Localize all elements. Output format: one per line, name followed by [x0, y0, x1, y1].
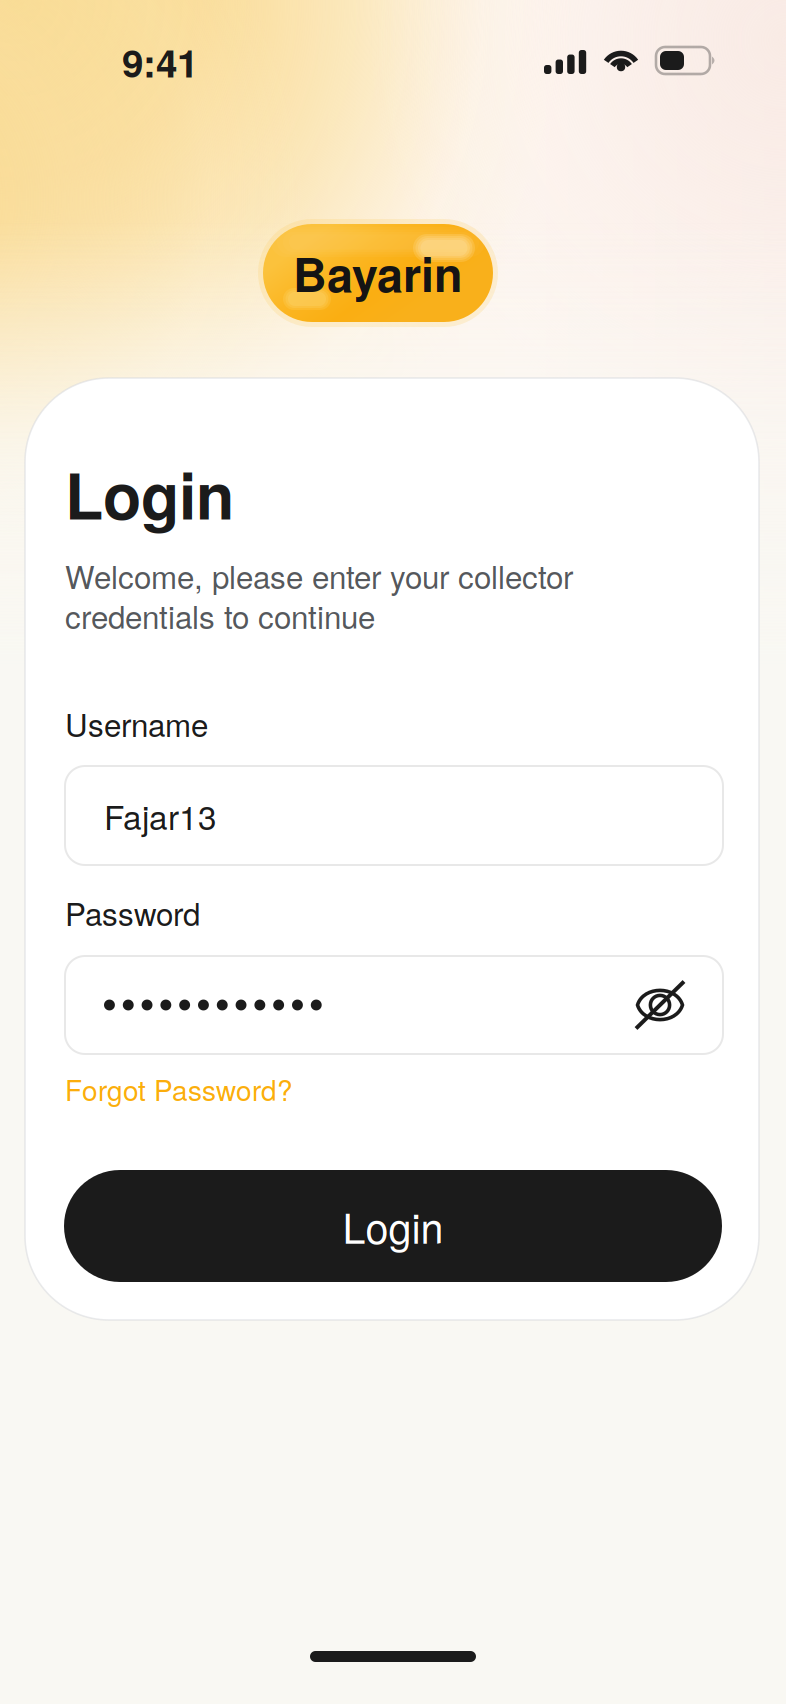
staticText: 9:41: [122, 34, 198, 89]
staticText: Bayarin: [293, 240, 463, 306]
staticText: Fajar13: [104, 792, 217, 839]
staticText: Password: [65, 890, 200, 935]
staticText: Welcome, please enter your collector: [65, 553, 573, 598]
staticText: Forgot Password?: [65, 1069, 293, 1109]
staticText: Username: [65, 701, 208, 746]
button[interactable]: Forgot Password?: [65, 1071, 293, 1107]
staticText: Login: [342, 1196, 443, 1256]
button[interactable]: Show password: [626, 971, 694, 1039]
staticText: credentials to continue: [65, 593, 375, 638]
button[interactable]: Login: [64, 1170, 722, 1282]
staticText: Login: [65, 449, 234, 539]
